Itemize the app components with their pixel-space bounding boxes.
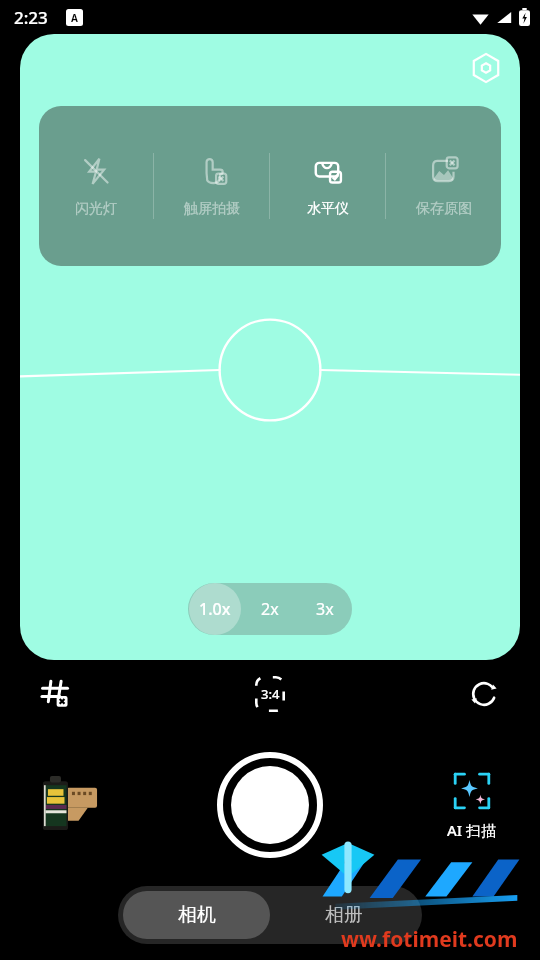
- staticText: A: [71, 11, 78, 25]
- button[interactable]: 相册: [270, 891, 417, 939]
- button[interactable]: AI 扫描: [426, 770, 518, 840]
- button[interactable]: Switch camera: [462, 672, 506, 716]
- button[interactable]: Grid off: [34, 672, 78, 716]
- staticText: 闪光灯: [75, 200, 117, 218]
- button[interactable]: 3x: [297, 583, 352, 635]
- button[interactable]: Shutter: [218, 753, 322, 857]
- staticText: 3:4: [261, 685, 280, 703]
- staticText: 触屏拍摄: [184, 200, 240, 218]
- staticText: 相机: [178, 903, 216, 927]
- button[interactable]: 闪光灯: [39, 106, 153, 266]
- button[interactable]: Settings: [468, 50, 504, 86]
- button[interactable]: 触屏拍摄: [154, 106, 269, 266]
- button[interactable]: 水平仪: [270, 106, 385, 266]
- staticText: 3x: [316, 598, 334, 620]
- staticText: AI 扫描: [447, 820, 497, 840]
- staticText: ww.fotimeit.com: [341, 925, 518, 954]
- button[interactable]: 相机: [123, 891, 270, 939]
- button[interactable]: 2x: [242, 583, 297, 635]
- button[interactable]: Gallery: [34, 771, 102, 839]
- staticText: 保存原图: [416, 200, 472, 218]
- staticText: 2x: [261, 598, 279, 620]
- staticText: 2:23: [14, 6, 48, 29]
- button[interactable]: 3:4: [250, 672, 290, 716]
- staticText: 水平仪: [307, 200, 349, 218]
- staticText: 相册: [325, 903, 363, 927]
- button[interactable]: 1.0x: [188, 583, 242, 635]
- button[interactable]: 保存原图: [386, 106, 501, 266]
- staticText: 1.0x: [199, 598, 231, 620]
